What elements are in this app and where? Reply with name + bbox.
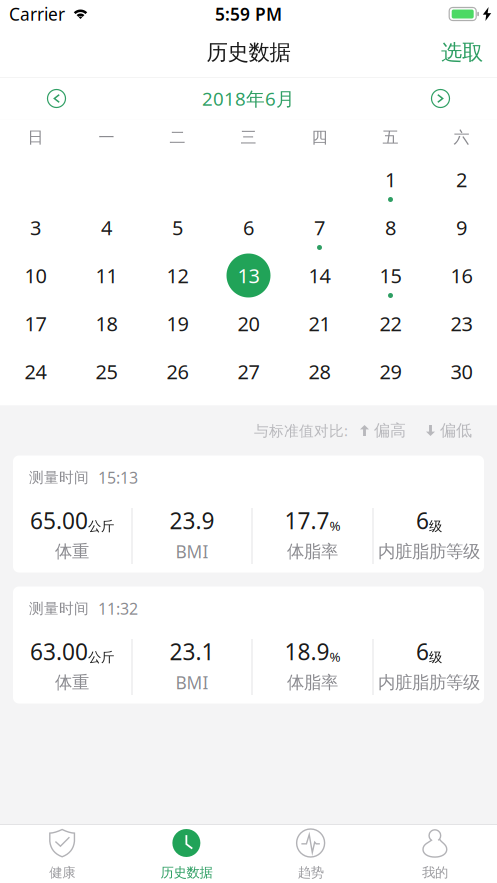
- button[interactable]: 19: [142, 299, 213, 347]
- staticText: 2: [456, 166, 467, 193]
- staticText: 3: [30, 214, 41, 241]
- button[interactable]: 15: [355, 251, 426, 299]
- staticText: 9: [456, 214, 467, 241]
- button[interactable]: 1: [355, 155, 426, 203]
- staticText: 24: [24, 358, 46, 385]
- button[interactable]: 30: [426, 347, 497, 395]
- staticText: 三: [240, 128, 256, 147]
- staticText: 趋势: [298, 864, 324, 881]
- button[interactable]: 9: [426, 203, 497, 251]
- staticText: 23.1: [169, 636, 214, 666]
- staticText: 12: [166, 262, 188, 289]
- staticText: 四: [311, 128, 327, 147]
- staticText: 11: [95, 262, 117, 289]
- button[interactable]: 18: [71, 299, 142, 347]
- button[interactable]: 我的: [373, 825, 497, 883]
- staticText: 健康: [49, 864, 75, 881]
- button[interactable]: 28: [284, 347, 355, 395]
- staticText: 11:32: [98, 598, 138, 619]
- button[interactable]: 6: [213, 203, 284, 251]
- staticText: 公斤: [88, 649, 114, 666]
- staticText: 63.00: [30, 636, 88, 666]
- staticText: 我的: [422, 864, 448, 881]
- button[interactable]: 10: [0, 251, 71, 299]
- button[interactable]: 4: [71, 203, 142, 251]
- staticText: 27: [237, 358, 259, 385]
- staticText: 内脏脂肪等级: [378, 672, 480, 693]
- staticText: 6: [416, 636, 429, 666]
- button[interactable]: 29: [355, 347, 426, 395]
- staticText: 6: [243, 214, 254, 241]
- staticText: 五: [382, 128, 398, 147]
- button[interactable]: Previous month: [34, 77, 79, 119]
- staticText: 23: [450, 310, 472, 337]
- button[interactable]: 12: [142, 251, 213, 299]
- staticText: 体重: [55, 672, 89, 693]
- staticText: BMI: [175, 671, 208, 694]
- staticText: %: [329, 517, 340, 534]
- staticText: 13: [237, 262, 259, 289]
- staticText: 历史数据: [206, 39, 290, 66]
- staticText: 18: [95, 310, 117, 337]
- button[interactable]: 17: [0, 299, 71, 347]
- staticText: 5: [172, 214, 183, 241]
- staticText: 15:13: [98, 467, 138, 488]
- button[interactable]: 21: [284, 299, 355, 347]
- staticText: 内脏脂肪等级: [378, 541, 480, 562]
- staticText: 与标准值对比:: [254, 421, 348, 440]
- staticText: 17: [24, 310, 46, 337]
- staticText: BMI: [175, 540, 208, 563]
- staticText: 10: [24, 262, 46, 289]
- staticText: 65.00: [30, 505, 88, 535]
- staticText: 23.9: [169, 505, 214, 535]
- staticText: 20: [237, 310, 259, 337]
- staticText: 8: [385, 214, 396, 241]
- staticText: 六: [453, 128, 469, 147]
- staticText: 公斤: [88, 518, 114, 535]
- button[interactable]: 14: [284, 251, 355, 299]
- button[interactable]: 27: [213, 347, 284, 395]
- staticText: 7: [314, 214, 325, 241]
- staticText: 16: [450, 262, 472, 289]
- staticText: 17.7: [284, 505, 329, 535]
- staticText: 偏低: [440, 421, 472, 440]
- button[interactable]: 趋势: [248, 825, 373, 883]
- button[interactable]: 22: [355, 299, 426, 347]
- staticText: 5:59 PM: [215, 2, 282, 25]
- staticText: 一: [98, 128, 114, 147]
- button[interactable]: 健康: [0, 825, 124, 883]
- staticText: 21: [308, 310, 330, 337]
- staticText: 体脂率: [287, 672, 338, 693]
- staticText: 19: [166, 310, 188, 337]
- staticText: 28: [308, 358, 330, 385]
- staticText: 体重: [55, 541, 89, 562]
- button[interactable]: 23: [426, 299, 497, 347]
- button[interactable]: 2: [426, 155, 497, 203]
- staticText: 18.9: [284, 636, 329, 666]
- staticText: 15: [379, 262, 401, 289]
- button[interactable]: 20: [213, 299, 284, 347]
- button[interactable]: 3: [0, 203, 71, 251]
- staticText: 级: [429, 518, 442, 535]
- staticText: 2018年6月: [202, 86, 295, 111]
- staticText: 选取: [441, 39, 483, 66]
- staticText: 26: [166, 358, 188, 385]
- button[interactable]: Next month: [418, 77, 463, 119]
- staticText: 14: [308, 262, 330, 289]
- button[interactable]: 8: [355, 203, 426, 251]
- staticText: 偏高: [374, 421, 406, 440]
- staticText: 30: [450, 358, 472, 385]
- staticText: 1: [385, 166, 396, 193]
- staticText: Carrier: [9, 2, 65, 25]
- button[interactable]: 11: [71, 251, 142, 299]
- button[interactable]: 7: [284, 203, 355, 251]
- button[interactable]: 25: [71, 347, 142, 395]
- button[interactable]: 26: [142, 347, 213, 395]
- button[interactable]: 16: [426, 251, 497, 299]
- button[interactable]: 选取: [427, 28, 497, 77]
- button[interactable]: 5: [142, 203, 213, 251]
- button[interactable]: 24: [0, 347, 71, 395]
- button[interactable]: 13: [213, 251, 284, 299]
- button[interactable]: 历史数据: [124, 825, 248, 883]
- staticText: 22: [379, 310, 401, 337]
